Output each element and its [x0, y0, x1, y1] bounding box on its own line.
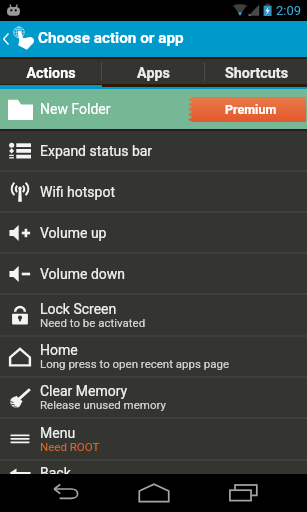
staticText: Premium [225, 102, 277, 117]
staticText: Home [40, 342, 78, 358]
staticText: Actions [26, 65, 76, 82]
staticText: New Folder [40, 101, 111, 117]
button[interactable]: Clear Memory [0, 378, 307, 417]
button[interactable]: Shortcuts [205, 59, 307, 84]
button[interactable]: Lock Screen [0, 295, 307, 335]
button[interactable]: Actions [0, 59, 101, 84]
button[interactable]: Wifi hotspot [0, 172, 307, 211]
button[interactable]: Recent apps [205, 474, 307, 512]
staticText: Back [40, 465, 71, 481]
staticText: Need to be activated [40, 316, 146, 329]
button[interactable]: New Folder [0, 89, 307, 129]
staticText: Lock Screen [40, 301, 117, 317]
staticText: Volume down [40, 266, 126, 282]
staticText: Long press to open recent apps page [40, 357, 230, 370]
staticText: Volume up [40, 225, 107, 241]
staticText: Menu [40, 425, 76, 441]
button[interactable]: Home [0, 337, 307, 376]
staticText: 2:09 [276, 3, 302, 18]
staticText: Apps [137, 65, 170, 82]
staticText: Release unused memory [40, 398, 166, 411]
staticText: Wifi hotspot [40, 184, 115, 200]
button[interactable]: Apps [102, 59, 204, 84]
staticText: Choose action or app [38, 29, 184, 47]
button[interactable]: Back [0, 474, 103, 512]
button[interactable]: Premium [188, 97, 306, 122]
button[interactable]: Volume up [0, 213, 307, 252]
button[interactable]: Navigate up [0, 21, 38, 57]
staticText: Need ROOT [40, 440, 100, 453]
staticText: Shortcuts [225, 65, 288, 82]
button[interactable]: Home [103, 474, 205, 512]
button[interactable]: Back [0, 461, 307, 500]
button[interactable]: Volume down [0, 254, 307, 293]
staticText: Expand status bar [40, 143, 153, 159]
staticText: Clear Memory [40, 383, 128, 399]
button[interactable]: Menu [0, 419, 307, 459]
button[interactable]: Expand status bar [0, 131, 307, 170]
